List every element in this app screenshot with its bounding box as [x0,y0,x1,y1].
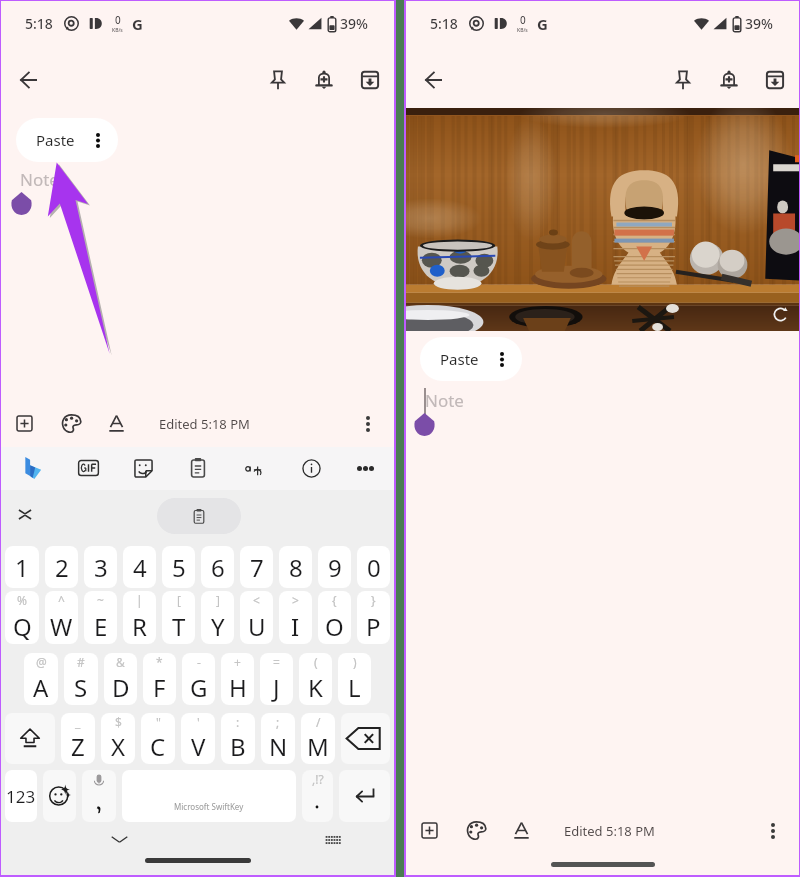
button[interactable]: Rotate image [767,301,793,327]
staticText: B [230,730,246,763]
button[interactable]: ~ [84,591,117,644]
button[interactable]: Add content [411,812,448,849]
button[interactable]: < [240,591,273,644]
button[interactable]: > [279,591,312,644]
button[interactable]: ( [299,653,332,705]
button[interactable]: + [221,653,254,705]
staticText: C [150,730,166,763]
button[interactable]: Microsoft SwiftKey [122,770,296,822]
button[interactable]: Background colour [52,405,89,442]
staticText: 39% [745,14,773,33]
button[interactable]: Back [413,60,453,100]
button[interactable]: Emoji [43,770,76,822]
staticText: ,!? [312,771,324,787]
button[interactable]: Hide keyboard [104,824,134,854]
button[interactable]: Paste [16,118,118,162]
button[interactable]: Background colour [457,812,494,849]
button[interactable]: Enter [339,770,390,822]
button[interactable]: Expand suggestions [11,500,39,528]
button[interactable]: Bing [16,451,50,485]
button[interactable]: Formatting [98,405,135,442]
button[interactable]: * [143,653,176,705]
button[interactable]: 0 [357,546,390,588]
staticText: 39% [340,14,368,33]
button[interactable]: Add reminder [304,60,344,100]
button[interactable]: 1 [5,546,39,588]
button[interactable]: Punctuation [302,770,333,822]
button[interactable]: Archive [350,60,390,100]
staticText: G [132,14,143,34]
staticText: < [253,592,260,608]
staticText: P [366,610,381,643]
button[interactable]: Back [8,60,48,100]
button[interactable]: Clipboard [181,451,215,485]
staticText: 5:18 [25,14,53,33]
button[interactable]: 7 [240,546,273,588]
button[interactable]: 123 [5,770,37,822]
button[interactable]: More [348,451,382,485]
button[interactable]: { [318,591,351,644]
button[interactable]: 3 [84,546,117,588]
button[interactable]: Formatting [503,812,540,849]
button[interactable]: / [301,713,335,764]
button[interactable]: 4 [123,546,156,588]
button[interactable]: Clipboard suggestion [157,498,241,534]
button[interactable]: _ [61,713,95,764]
button[interactable]: Translate [238,451,272,485]
staticText: N [269,730,288,763]
button[interactable]: & [104,653,137,705]
staticText: 3 [94,551,108,584]
button[interactable]: = [260,653,293,705]
button[interactable]: ' [181,713,215,764]
button[interactable]: Switch keyboard [318,824,348,854]
staticText: ) [353,654,357,670]
staticText: Z [71,730,85,763]
button[interactable]: GIF [71,451,105,485]
staticText: 0 [520,13,526,27]
button[interactable]: Archive [755,60,795,100]
staticText: H [229,671,247,704]
button[interactable]: " [141,713,175,764]
button[interactable]: More options [349,405,386,442]
button[interactable]: $ [101,713,135,764]
button[interactable]: ; [261,713,295,764]
staticText: Paste [36,130,75,150]
button[interactable]: # [64,653,98,705]
button[interactable]: Backspace [341,713,390,764]
button[interactable]: Shift [5,713,55,764]
button[interactable]: [ [162,591,195,644]
button[interactable]: : [221,713,255,764]
button[interactable]: | [123,591,156,644]
staticText: 8 [289,551,303,584]
staticText: F [153,671,166,704]
button[interactable]: 9 [318,546,351,588]
staticText: Q [13,610,32,643]
button[interactable]: Info [294,451,328,485]
button[interactable]: ] [201,591,234,644]
button[interactable]: 6 [201,546,234,588]
button[interactable]: 5 [162,546,195,588]
button[interactable]: @ [24,653,58,705]
staticText: Paste [440,349,479,369]
button[interactable]: ) [338,653,371,705]
staticText: M [307,730,329,763]
button[interactable]: More options [754,812,791,849]
staticText: " [156,714,161,730]
button[interactable]: Pin note [663,60,703,100]
button[interactable]: Pin note [258,60,298,100]
button[interactable]: Add content [6,405,43,442]
staticText: J [273,671,280,704]
button[interactable]: Add reminder [709,60,749,100]
staticText: 4 [133,551,147,584]
staticText: Microsoft SwiftKey [174,801,244,812]
button[interactable]: 8 [279,546,312,588]
button[interactable]: Voice input [82,770,116,822]
staticText: KB/s [517,27,528,34]
button[interactable]: % [5,591,39,644]
button[interactable]: Stickers [126,451,160,485]
button[interactable]: ^ [45,591,78,644]
button[interactable]: 2 [45,546,78,588]
button[interactable]: Paste [420,337,522,381]
button[interactable]: } [357,591,390,644]
button[interactable]: - [182,653,215,705]
